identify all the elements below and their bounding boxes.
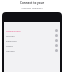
staticText: Connect to your — [20, 1, 44, 5]
button[interactable]: Living Room — [4, 28, 60, 33]
staticText: Kitchen — [6, 34, 15, 37]
staticText: Bedroom — [6, 39, 17, 42]
button[interactable]: Garage — [4, 48, 60, 53]
button[interactable]: Kitchen — [4, 33, 60, 38]
staticText: Living Room — [6, 29, 21, 32]
button[interactable]: Office — [4, 43, 60, 48]
staticText: Office — [6, 44, 13, 47]
staticText: Garage — [6, 49, 15, 52]
staticText: Wireless Speakers — [21, 6, 43, 9]
button[interactable]: Bedroom — [4, 38, 60, 43]
